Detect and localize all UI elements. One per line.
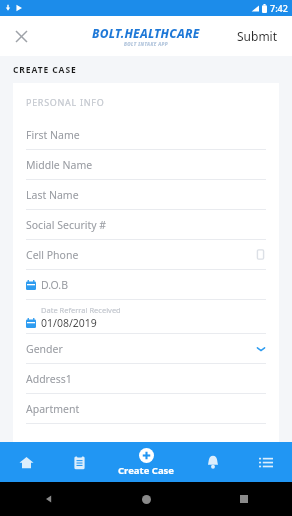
button[interactable]: Social Security #	[26, 210, 266, 240]
button[interactable]: Notifications	[186, 442, 239, 482]
button[interactable]: Recent apps	[195, 482, 292, 516]
staticText: Address1	[26, 372, 266, 386]
staticText: Apartment	[26, 402, 266, 416]
other: Expand gender options	[256, 344, 266, 354]
staticText: Submit	[237, 28, 278, 44]
staticText: 7:42	[270, 2, 288, 14]
button[interactable]: First Name	[26, 120, 266, 150]
staticText: Social Security #	[26, 218, 266, 232]
button[interactable]: D.O.B	[26, 270, 266, 300]
button[interactable]: Submit	[233, 22, 282, 50]
staticText: Gender	[26, 342, 256, 356]
staticText: Middle Name	[26, 158, 266, 172]
button[interactable]: Close	[8, 23, 34, 49]
staticText: Date Referral Received	[41, 305, 121, 315]
other: Use phone number	[255, 249, 266, 260]
button[interactable]: Cases	[53, 442, 106, 482]
button[interactable]: Address1	[26, 364, 266, 394]
button[interactable]: Last Name	[26, 180, 266, 210]
button[interactable]: Date Referral Received	[26, 300, 266, 334]
button[interactable]: Gender	[26, 334, 266, 364]
button[interactable]: Apartment	[26, 394, 266, 424]
staticText: Create Case	[118, 464, 175, 477]
staticText: 01/08/2019	[41, 316, 97, 330]
staticText: BOLT INTAKE APP	[124, 41, 169, 47]
button[interactable]: Cell Phone	[26, 240, 266, 270]
button[interactable]: Home	[98, 482, 195, 516]
staticText: Last Name	[26, 188, 266, 202]
staticText: First Name	[26, 128, 266, 142]
button[interactable]: Menu	[239, 442, 292, 482]
button[interactable]: Home	[0, 442, 53, 482]
button[interactable]: Middle Name	[26, 150, 266, 180]
staticText: BOLT.HEALTHCARE	[92, 25, 200, 41]
staticText: Cell Phone	[26, 248, 255, 262]
button[interactable]: Create Case	[106, 442, 186, 482]
staticText: PERSONAL INFO	[26, 96, 105, 108]
button[interactable]: Back	[0, 482, 98, 516]
staticText: CREATE CASE	[13, 64, 77, 76]
staticText: D.O.B	[41, 278, 266, 292]
